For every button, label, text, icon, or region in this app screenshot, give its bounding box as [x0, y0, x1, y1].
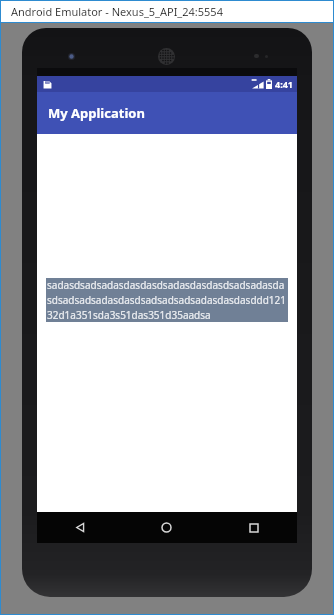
- staticText: sadasdsadsadasdasdasdsadasdasdasdsadsada…: [47, 278, 287, 322]
- button[interactable]: Recents: [210, 512, 297, 543]
- button[interactable]: Back: [37, 512, 123, 543]
- button[interactable]: My Application: [37, 92, 297, 134]
- staticText: My Application: [48, 104, 145, 122]
- staticText: 4:41: [275, 78, 293, 90]
- staticText: Android Emulator - Nexus_5_API_24:5554: [11, 4, 223, 19]
- button[interactable]: sadasdsadsadasdasdasdsadasdasdasdsadsada…: [46, 278, 288, 322]
- button[interactable]: Home: [123, 512, 210, 543]
